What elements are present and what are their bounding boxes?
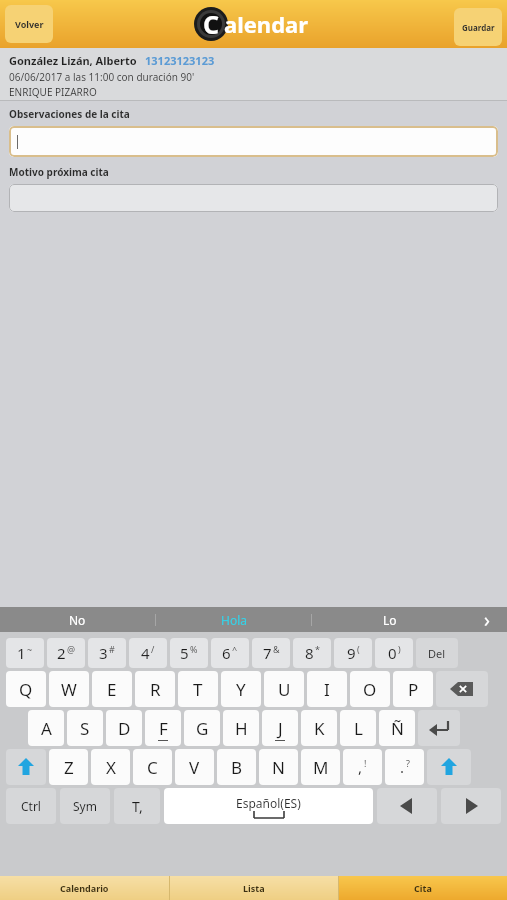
button[interactable]: N: [259, 749, 298, 785]
button[interactable]: Calendario: [0, 876, 169, 900]
button[interactable]: Ñ: [379, 710, 415, 746]
button[interactable]: T: [178, 671, 218, 707]
button[interactable]: Español(ES): [164, 788, 373, 824]
button[interactable]: A: [28, 710, 64, 746]
button[interactable]: W: [49, 671, 89, 707]
staticText: C: [147, 756, 158, 779]
button[interactable]: 5: [170, 638, 208, 668]
staticText: 06/06/2017 a las 11:00 con duración 90': [9, 70, 195, 84]
staticText: ,: [358, 757, 363, 777]
button[interactable]: 8: [293, 638, 331, 668]
staticText: C: [203, 7, 220, 41]
button[interactable]: Hola: [156, 607, 311, 632]
button[interactable]: ,: [343, 749, 382, 785]
button[interactable]: P: [393, 671, 433, 707]
staticText: T: [193, 678, 203, 701]
staticText: Lista: [243, 882, 265, 894]
staticText: @: [67, 643, 76, 655]
staticText: M: [313, 756, 329, 779]
button[interactable]: 1: [6, 638, 44, 668]
button[interactable]: More suggestions: [467, 607, 507, 632]
button[interactable]: M: [301, 749, 340, 785]
button[interactable]: B: [217, 749, 256, 785]
button[interactable]: Y: [221, 671, 261, 707]
button[interactable]: L: [340, 710, 376, 746]
staticText: ^: [232, 643, 238, 655]
button[interactable]: Sym: [60, 788, 110, 824]
staticText: alendar: [224, 9, 309, 39]
staticText: I: [324, 678, 330, 701]
staticText: ENRIQUE PIZARRO: [9, 85, 97, 99]
button[interactable]: U: [264, 671, 304, 707]
button[interactable]: J: [262, 710, 298, 746]
button[interactable]: Cursor right: [441, 788, 501, 824]
button[interactable]: 0: [375, 638, 413, 668]
button[interactable]: I: [307, 671, 347, 707]
staticText: X: [106, 756, 116, 779]
button[interactable]: Lo: [312, 607, 467, 632]
button[interactable]: 9: [334, 638, 372, 668]
button[interactable]: E: [92, 671, 132, 707]
button[interactable]: Backspace: [436, 671, 488, 707]
button[interactable]: Lista: [170, 876, 338, 900]
button[interactable]: K: [301, 710, 337, 746]
button[interactable]: 6: [211, 638, 249, 668]
button[interactable]: Ctrl: [6, 788, 56, 824]
staticText: P: [408, 678, 419, 701]
staticText: D: [118, 717, 131, 740]
staticText: G: [196, 717, 209, 740]
button[interactable]: Volver: [5, 5, 53, 43]
button[interactable]: Shift: [6, 749, 46, 785]
staticText: ›: [484, 607, 490, 632]
button[interactable]: Guardar: [454, 8, 502, 46]
staticText: González Lizán, Alberto: [9, 53, 137, 68]
button[interactable]: O: [350, 671, 390, 707]
staticText: S: [80, 717, 90, 740]
button[interactable]: Cita: [339, 876, 507, 900]
button[interactable]: 13123123123: [145, 53, 215, 68]
button[interactable]: .: [385, 749, 424, 785]
button[interactable]: [9, 184, 498, 212]
button[interactable]: No: [0, 607, 155, 632]
button[interactable]: 2: [47, 638, 85, 668]
staticText: R: [150, 678, 161, 701]
staticText: A: [41, 717, 52, 740]
button[interactable]: [9, 126, 498, 157]
staticText: *: [315, 643, 320, 655]
staticText: Sym: [73, 798, 97, 814]
button[interactable]: V: [175, 749, 214, 785]
staticText: Español(ES): [236, 795, 301, 811]
staticText: T,: [132, 797, 143, 816]
button[interactable]: F: [145, 710, 181, 746]
button[interactable]: Z: [49, 749, 88, 785]
staticText: #: [109, 643, 115, 655]
button[interactable]: C: [133, 749, 172, 785]
staticText: E: [107, 678, 117, 701]
staticText: /: [151, 643, 155, 655]
staticText: Lo: [383, 612, 397, 628]
button[interactable]: S: [67, 710, 103, 746]
staticText: 5: [180, 643, 189, 663]
staticText: Motivo próxima cita: [9, 165, 109, 179]
staticText: F: [159, 717, 168, 740]
button[interactable]: Change input method: [114, 788, 160, 824]
button[interactable]: Q: [6, 671, 46, 707]
button[interactable]: 4: [129, 638, 167, 668]
button[interactable]: X: [91, 749, 130, 785]
button[interactable]: H: [223, 710, 259, 746]
staticText: H: [235, 717, 248, 740]
staticText: .: [400, 757, 405, 777]
button[interactable]: Shift right: [427, 749, 471, 785]
button[interactable]: Cursor left: [377, 788, 437, 824]
button[interactable]: 7: [252, 638, 290, 668]
button[interactable]: Delete: [416, 638, 458, 668]
button[interactable]: R: [135, 671, 175, 707]
staticText: B: [231, 756, 243, 779]
button[interactable]: 3: [88, 638, 126, 668]
button[interactable]: G: [184, 710, 220, 746]
button[interactable]: D: [106, 710, 142, 746]
staticText: Volver: [15, 18, 44, 30]
button[interactable]: Enter: [418, 710, 460, 746]
staticText: Hola: [221, 612, 247, 628]
staticText: O: [363, 678, 377, 701]
